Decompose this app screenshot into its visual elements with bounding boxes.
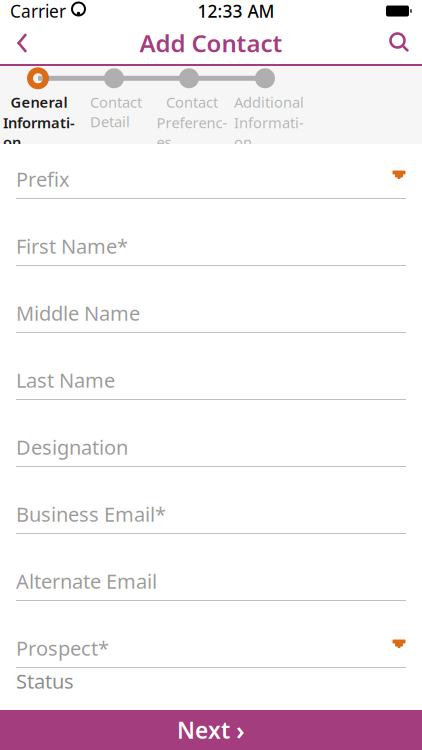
staticText: Contact Detail — [90, 92, 142, 131]
button[interactable]: Search — [378, 22, 422, 64]
staticText: Carrier — [10, 0, 66, 22]
staticText: General — [10, 92, 67, 112]
staticText: Preferences — [156, 113, 227, 152]
staticText: Prospect* — [16, 635, 109, 661]
button[interactable]: Back — [0, 22, 44, 64]
staticText: Middle Name — [16, 300, 140, 326]
staticText: First Name* — [16, 233, 128, 259]
staticText: Additional — [234, 92, 304, 112]
button[interactable]: Business Email* — [0, 495, 422, 534]
button[interactable]: Designation — [0, 428, 422, 467]
staticText: Last Name — [16, 367, 115, 393]
button[interactable]: Middle Name — [0, 294, 422, 333]
staticText: Information — [3, 113, 75, 152]
button[interactable]: Next — [0, 710, 422, 750]
button[interactable]: Prefix — [0, 160, 422, 199]
staticText: › — [236, 713, 245, 747]
button[interactable]: Last Name — [0, 361, 422, 400]
staticText: Add Contact — [139, 27, 282, 59]
button[interactable]: Contact — [154, 92, 230, 152]
button[interactable]: Alternate Email — [0, 562, 422, 601]
staticText: Prefix — [16, 166, 70, 192]
staticText: 12:33 AM — [197, 0, 274, 22]
button[interactable]: Additional — [230, 92, 308, 152]
staticText: Next — [177, 715, 230, 745]
button[interactable]: First Name* — [0, 227, 422, 266]
button[interactable]: General — [0, 92, 78, 152]
staticText: Information — [234, 113, 304, 152]
staticText: Contact — [166, 92, 218, 112]
staticText: Alternate Email — [16, 568, 157, 594]
staticText: Designation — [16, 434, 128, 460]
staticText: Business Email* — [16, 501, 166, 527]
staticText: Status — [16, 668, 74, 694]
button[interactable]: Prospect* — [0, 629, 422, 668]
button[interactable]: Contact Detail — [78, 92, 154, 152]
